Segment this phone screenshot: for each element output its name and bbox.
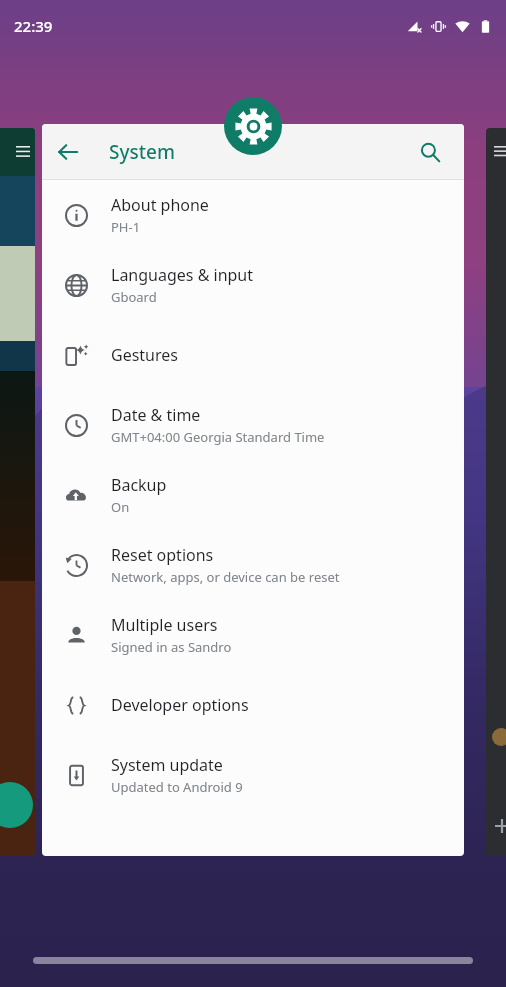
staticText: 22:39 bbox=[14, 16, 53, 36]
staticText: Signed in as Sandro bbox=[111, 638, 232, 656]
button[interactable]: Languages & input bbox=[42, 250, 464, 320]
staticText: System bbox=[109, 139, 175, 165]
staticText: Reset options bbox=[111, 544, 214, 566]
staticText: Developer options bbox=[111, 694, 249, 716]
button[interactable]: Reset options bbox=[42, 530, 464, 600]
button[interactable]: Developer options bbox=[42, 670, 464, 740]
staticText: On bbox=[111, 498, 130, 516]
button[interactable]: About phone bbox=[42, 180, 464, 250]
staticText: Network, apps, or device can be reset bbox=[111, 568, 340, 586]
staticText: About phone bbox=[111, 194, 209, 216]
staticText: GMT+04:00 Georgia Standard Time bbox=[111, 428, 325, 446]
staticText: System update bbox=[111, 754, 223, 776]
staticText: Languages & input bbox=[111, 264, 254, 286]
button[interactable]: Date & time bbox=[42, 390, 464, 460]
button[interactable]: Gestures bbox=[42, 320, 464, 390]
button[interactable]: System update bbox=[42, 740, 464, 810]
other: Settings app icon bbox=[224, 97, 282, 155]
staticText: Date & time bbox=[111, 404, 201, 426]
button[interactable]: Backup bbox=[42, 460, 464, 530]
button[interactable]: Back bbox=[42, 126, 94, 178]
staticText: Gestures bbox=[111, 344, 178, 366]
staticText: Backup bbox=[111, 474, 167, 496]
button[interactable]: Search bbox=[404, 126, 456, 178]
staticText: Updated to Android 9 bbox=[111, 778, 243, 796]
staticText: Multiple users bbox=[111, 614, 218, 636]
staticText: PH-1 bbox=[111, 218, 141, 236]
staticText: Gboard bbox=[111, 288, 157, 306]
button[interactable]: Multiple users bbox=[42, 600, 464, 670]
